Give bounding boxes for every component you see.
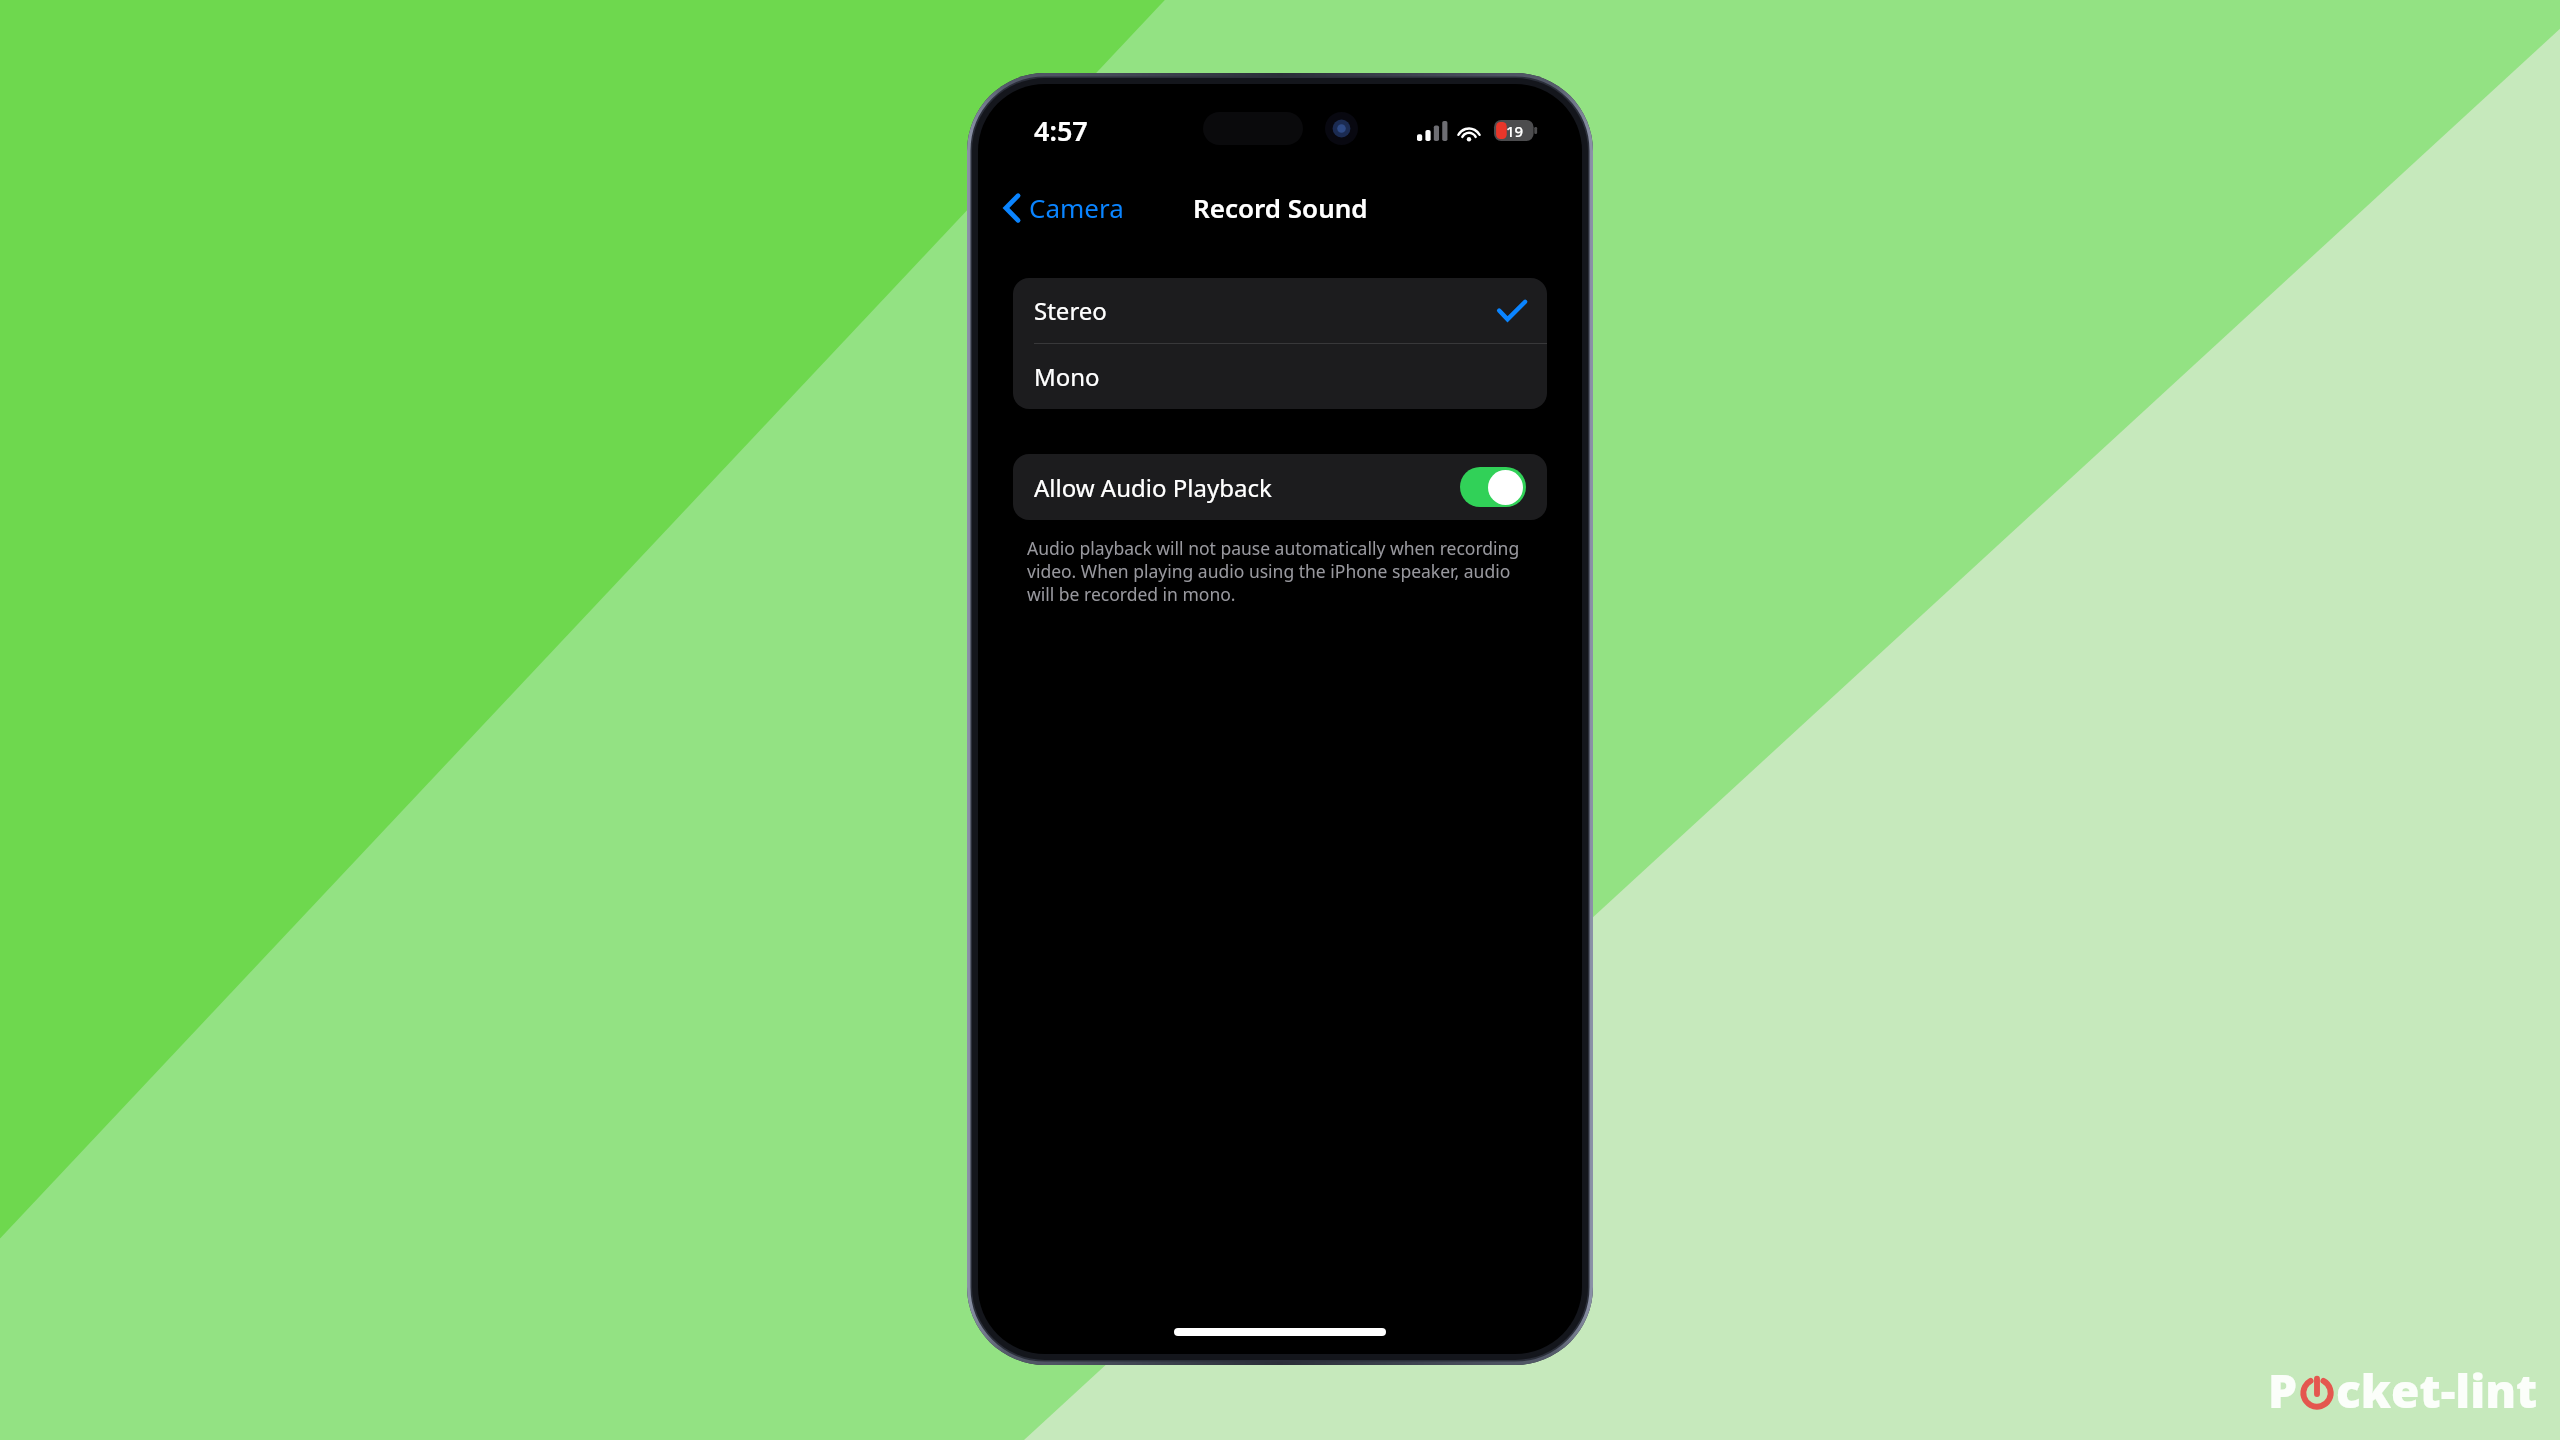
staticText: Allow Audio Playback: [1034, 471, 1460, 504]
staticText: P: [2268, 1359, 2298, 1422]
staticText: Record Sound: [1193, 190, 1368, 225]
staticText: Mono: [1034, 360, 1526, 393]
button[interactable]: Stereo: [1013, 278, 1547, 343]
staticText: 4:57: [1034, 112, 1088, 149]
button[interactable]: Mono: [1013, 344, 1547, 409]
staticText: Camera: [1029, 190, 1124, 225]
button[interactable]: Allow Audio Playback toggle: [1460, 467, 1526, 507]
button[interactable]: Camera: [978, 184, 1136, 231]
staticText: cket-lint: [2336, 1359, 2538, 1422]
staticText: Stereo: [1034, 294, 1498, 327]
button[interactable]: Allow Audio Playback: [1013, 454, 1547, 520]
staticText: Audio playback will not pause automatica…: [1027, 536, 1533, 606]
staticText: 19: [1506, 121, 1524, 141]
